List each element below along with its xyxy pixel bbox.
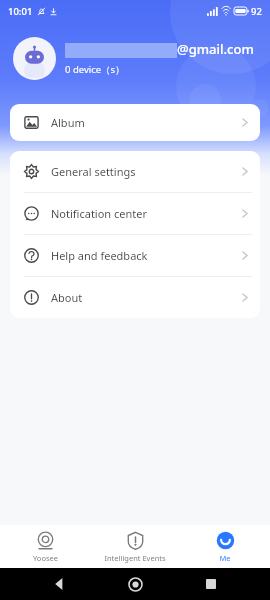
- button[interactable]: Me: [180, 525, 270, 568]
- staticText: Notification center: [51, 206, 148, 221]
- button[interactable]: General settings: [10, 151, 260, 192]
- staticText: Intelligent Events: [104, 553, 166, 563]
- staticText: General settings: [51, 164, 136, 179]
- button[interactable]: Yoosee: [0, 525, 90, 568]
- button[interactable]: Notification center: [10, 193, 260, 234]
- button[interactable]: Help and feedback: [10, 235, 260, 276]
- button[interactable]: Album: [10, 104, 260, 141]
- staticText: 0 device（s）: [65, 63, 125, 76]
- button[interactable]: About: [10, 277, 260, 318]
- staticText: @gmail.com: [177, 40, 254, 58]
- staticText: Me: [219, 553, 231, 563]
- button[interactable]: @gmail.com: [0, 22, 270, 94]
- staticText: Help and feedback: [51, 248, 148, 263]
- button[interactable]: Recents: [194, 568, 228, 600]
- button[interactable]: Home: [118, 568, 152, 600]
- staticText: Yoosee: [33, 553, 58, 563]
- staticText: 92: [251, 5, 262, 18]
- staticText: About: [51, 290, 83, 305]
- staticText: 10:01: [8, 5, 33, 18]
- button[interactable]: Intelligent Events: [90, 525, 180, 568]
- button[interactable]: Back: [42, 568, 76, 600]
- staticText: Album: [51, 115, 85, 130]
